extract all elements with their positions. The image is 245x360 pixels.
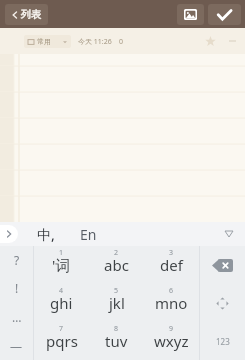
staticText: 今天 11:26 <box>78 37 112 47</box>
button[interactable]: 7 <box>34 322 89 360</box>
button[interactable]: 2 <box>89 246 144 284</box>
staticText: 中, <box>37 225 55 244</box>
staticText: 0 <box>119 37 124 47</box>
staticText: 9 <box>169 324 174 334</box>
staticText: pqrs <box>46 331 78 351</box>
button[interactable]: Arrow keys <box>200 284 245 322</box>
staticText: mno <box>155 293 188 313</box>
staticText: ghi <box>50 293 73 313</box>
button[interactable]: 8 <box>89 322 144 360</box>
staticText: 4 <box>59 286 64 296</box>
staticText: 列表 <box>21 8 41 21</box>
button[interactable]: 4 <box>34 284 89 322</box>
staticText: ? <box>14 252 20 268</box>
staticText: tuv <box>105 331 128 351</box>
staticText: 常用 <box>37 37 51 46</box>
staticText: ! <box>15 280 19 296</box>
button[interactable]: En <box>77 223 100 246</box>
staticText: 6 <box>169 286 174 296</box>
staticText: … <box>12 309 22 325</box>
button[interactable]: 123 <box>200 322 245 360</box>
button[interactable]: More options <box>226 35 238 47</box>
button[interactable]: 常用 <box>24 35 71 48</box>
staticText: 2 <box>114 248 119 258</box>
staticText: 123 <box>216 336 230 347</box>
staticText: 5 <box>114 286 119 296</box>
staticText: 8 <box>114 324 119 334</box>
button[interactable]: 3 <box>144 246 199 284</box>
staticText: def <box>160 255 183 275</box>
button[interactable]: ? <box>0 246 33 274</box>
button[interactable]: — <box>0 331 33 360</box>
button[interactable]: 9 <box>144 322 199 360</box>
staticText: — <box>10 338 23 354</box>
button[interactable]: 6 <box>144 284 199 322</box>
staticText: En <box>80 225 97 244</box>
button[interactable]: 中, <box>34 223 58 246</box>
staticText: jkl <box>109 293 125 313</box>
button[interactable]: 5 <box>89 284 144 322</box>
button[interactable]: Expand toolbar <box>0 225 18 243</box>
button[interactable]: Backspace <box>200 246 245 284</box>
button[interactable]: Done <box>208 4 241 25</box>
staticText: '词 <box>52 255 71 275</box>
button[interactable]: ! <box>0 274 33 302</box>
button[interactable]: Favorite <box>202 33 218 49</box>
button[interactable]: 1 <box>34 246 89 284</box>
staticText: 3 <box>169 248 174 258</box>
staticText: wxyz <box>154 331 189 351</box>
button[interactable]: Hide keyboard <box>222 227 236 241</box>
button[interactable]: Insert image <box>177 4 204 25</box>
button[interactable]: … <box>0 302 33 331</box>
staticText: 7 <box>59 324 64 334</box>
staticText: abc <box>104 255 129 275</box>
button[interactable]: 列表 <box>5 4 48 25</box>
staticText: 1 <box>59 248 64 258</box>
